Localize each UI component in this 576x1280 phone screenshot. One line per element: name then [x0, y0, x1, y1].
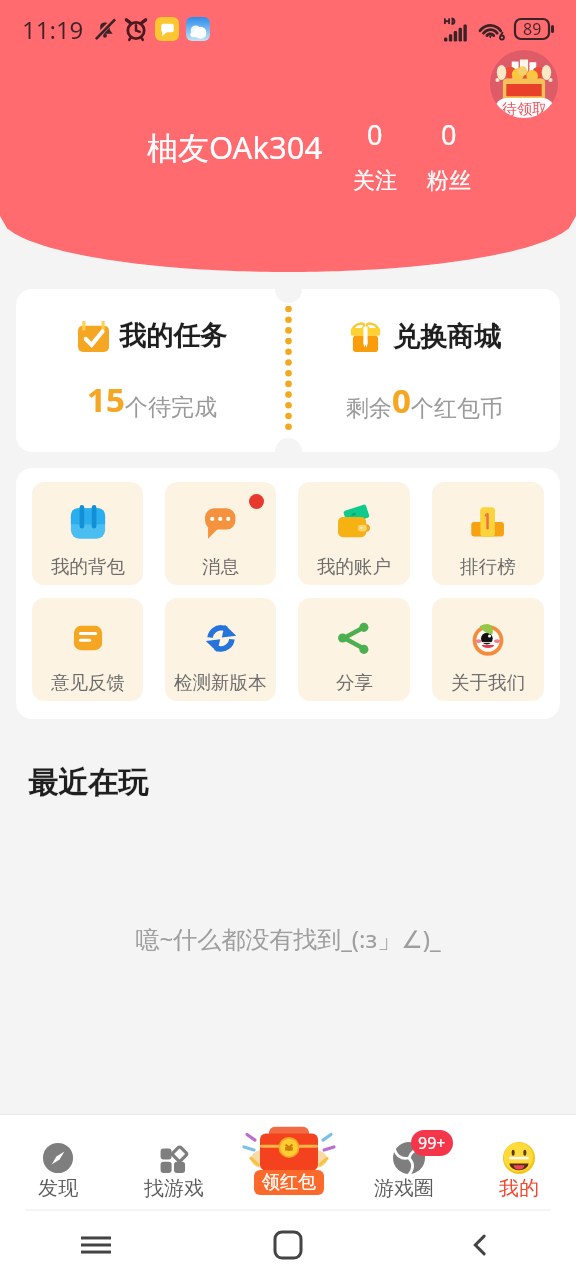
- staticText: 领红包: [262, 1171, 316, 1194]
- button[interactable]: 0: [427, 116, 471, 195]
- staticText: 消息: [202, 555, 239, 578]
- button[interactable]: 我的: [461, 1114, 576, 1210]
- staticText: 游戏圈: [374, 1176, 434, 1201]
- staticText: 11:19: [22, 13, 84, 46]
- staticText: 关于我们: [451, 671, 525, 694]
- button[interactable]: 0: [353, 116, 397, 195]
- button[interactable]: Home: [192, 1210, 384, 1280]
- staticText: 0: [441, 116, 457, 153]
- button[interactable]: 消息: [165, 482, 276, 585]
- staticText: 最近在玩: [28, 764, 148, 802]
- staticText: 意见反馈: [51, 671, 125, 694]
- staticText: 检测新版本: [174, 671, 267, 694]
- staticText: 我的: [499, 1176, 539, 1201]
- button[interactable]: 检测新版本: [165, 598, 276, 701]
- button[interactable]: Recents: [0, 1210, 192, 1280]
- staticText: 找游戏: [144, 1176, 204, 1201]
- staticText: 89: [523, 18, 542, 40]
- staticText: 待领取: [502, 100, 547, 118]
- staticText: 关注: [353, 167, 397, 195]
- staticText: 发现: [38, 1176, 78, 1201]
- button[interactable]: 排行榜: [432, 482, 544, 585]
- button[interactable]: 我的任务: [16, 289, 288, 452]
- button[interactable]: 意见反馈: [32, 598, 143, 701]
- staticText: 分享: [336, 671, 373, 694]
- staticText: 剩余: [346, 394, 392, 423]
- staticText: 兑换商城: [393, 320, 501, 354]
- staticText: 柚友OAk304: [147, 126, 323, 168]
- button[interactable]: 分享: [298, 598, 410, 701]
- button[interactable]: 兑换商城: [288, 289, 560, 452]
- staticText: 排行榜: [460, 555, 516, 578]
- staticText: 粉丝: [427, 167, 471, 195]
- button[interactable]: 领取红包: [490, 50, 558, 118]
- staticText: 99+: [418, 1132, 446, 1154]
- button[interactable]: 找游戏: [116, 1114, 231, 1210]
- staticText: 噫~什么都没有找到_(:з」∠)_: [0, 922, 576, 955]
- button[interactable]: 关于我们: [432, 598, 544, 701]
- staticText: 个红包币: [411, 394, 503, 423]
- button[interactable]: 99+: [346, 1114, 461, 1210]
- button[interactable]: Back: [384, 1210, 576, 1280]
- staticText: 个待完成: [125, 393, 217, 422]
- staticText: 0: [392, 378, 411, 423]
- button[interactable]: 我的背包: [32, 482, 143, 585]
- staticText: 0: [367, 116, 383, 153]
- staticText: 我的账户: [317, 555, 391, 578]
- button[interactable]: 发现: [0, 1114, 116, 1210]
- staticText: 15: [87, 377, 125, 422]
- staticText: 我的背包: [51, 555, 125, 578]
- staticText: 我的任务: [119, 319, 227, 353]
- button[interactable]: 领红包: [231, 1114, 346, 1210]
- button[interactable]: 我的账户: [298, 482, 410, 585]
